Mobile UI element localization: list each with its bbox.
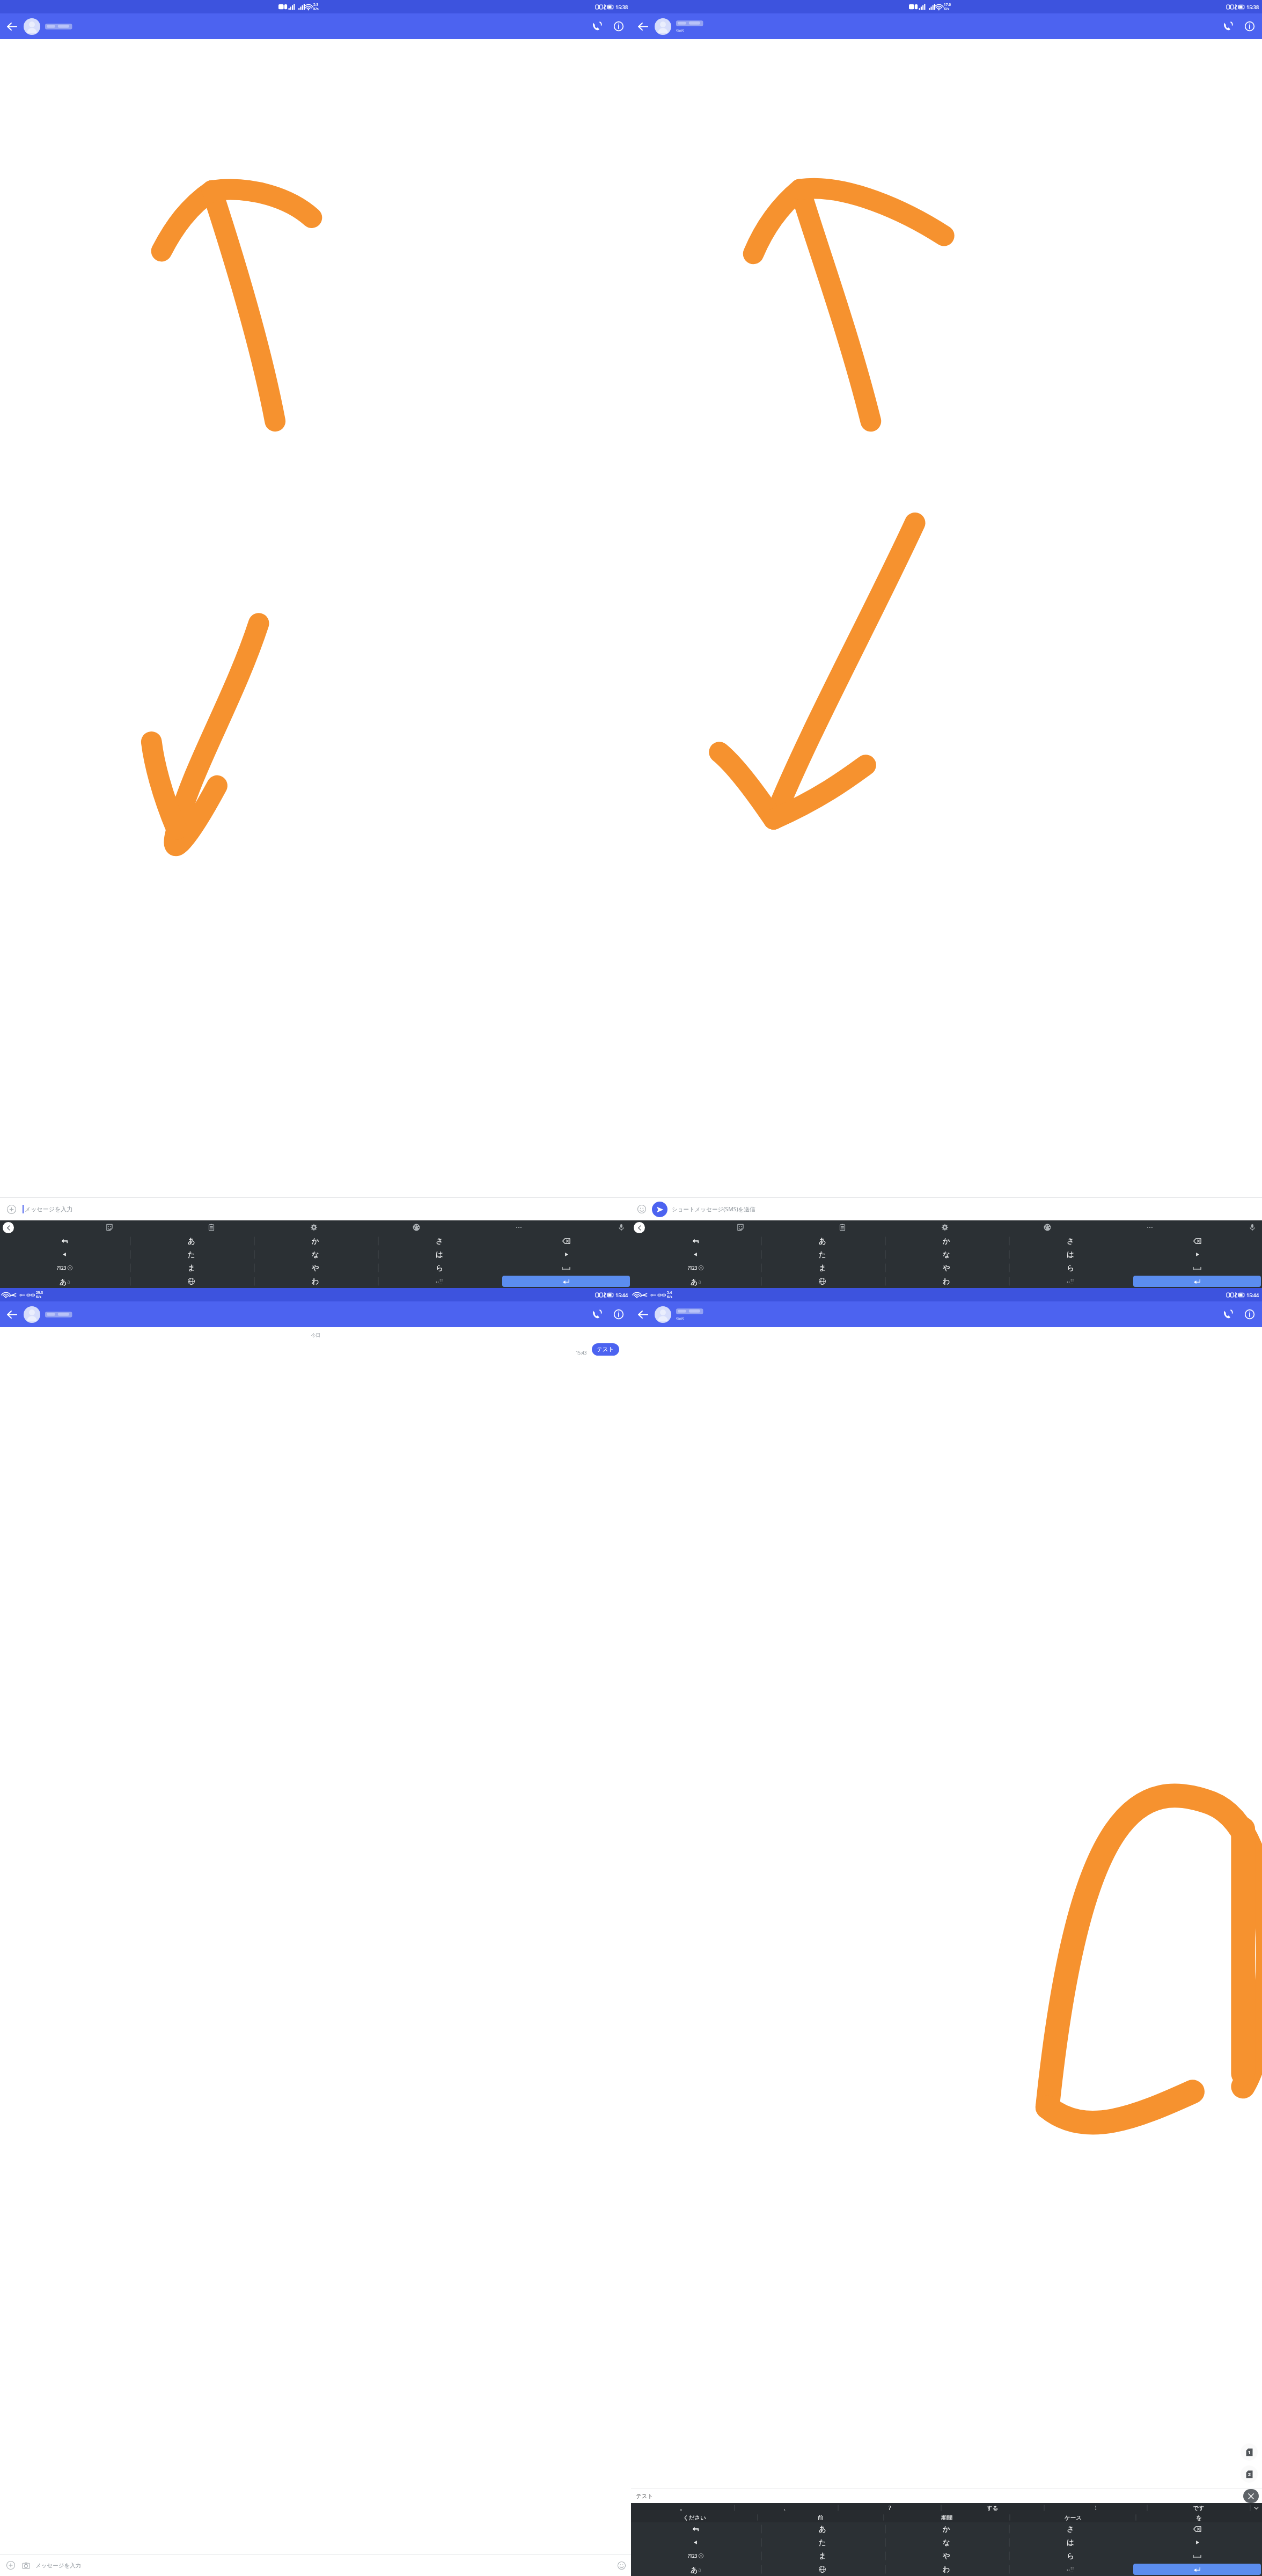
button[interactable]: を xyxy=(1136,2513,1262,2522)
button[interactable]: Settings xyxy=(307,1221,320,1234)
button[interactable]: Send with SIM 2 xyxy=(1241,2465,1258,2483)
button[interactable]: わ xyxy=(885,1276,1007,1287)
button[interactable]: な xyxy=(885,1249,1007,1260)
button[interactable]: 🌐 xyxy=(130,1276,252,1287)
button[interactable]: です xyxy=(1147,2503,1250,2513)
button[interactable]: な xyxy=(254,1249,376,1260)
button[interactable]: は xyxy=(378,1249,500,1260)
button[interactable]: ▶ xyxy=(502,1249,630,1260)
button[interactable]: あa xyxy=(632,2564,759,2575)
button[interactable]: 期間 xyxy=(884,2513,1010,2522)
button[interactable]: さ xyxy=(1009,1235,1131,1247)
button[interactable]: Clipboard xyxy=(205,1221,218,1234)
button[interactable]: Details xyxy=(607,15,630,38)
button[interactable]: ▶ xyxy=(1133,2537,1261,2548)
button[interactable]: ! xyxy=(1044,2503,1147,2513)
button[interactable]: あ xyxy=(761,1235,883,1247)
button[interactable]: Emoji xyxy=(614,2558,629,2573)
button[interactable]: な xyxy=(885,2537,1007,2548)
button[interactable]: 。 xyxy=(631,2503,735,2513)
button[interactable]: Voice input xyxy=(615,1221,628,1234)
button[interactable]: ,.?! xyxy=(1009,1276,1131,1287)
button[interactable]: Details xyxy=(607,1303,630,1326)
button[interactable]: か xyxy=(254,1235,376,1247)
button[interactable]: た xyxy=(130,1249,252,1260)
button[interactable]: テスト xyxy=(592,1343,619,1356)
button[interactable]: Details xyxy=(1238,1303,1261,1326)
button[interactable]: ま xyxy=(761,1262,883,1274)
button[interactable]: ← xyxy=(632,2523,759,2535)
button[interactable]: あ xyxy=(761,2523,883,2535)
button[interactable]: Call xyxy=(585,1303,607,1326)
button[interactable]: Back xyxy=(0,1302,24,1326)
button[interactable]: Send xyxy=(652,1202,667,1217)
button[interactable]: Settings xyxy=(938,1221,951,1234)
button[interactable]: Themes xyxy=(1041,1221,1054,1234)
button[interactable]: Emoji xyxy=(635,1202,649,1216)
button[interactable]: さ xyxy=(1009,2523,1131,2535)
button[interactable]: ケース xyxy=(1010,2513,1136,2522)
button[interactable]: ,.?! xyxy=(378,1276,500,1287)
button[interactable]: 前 xyxy=(758,2513,884,2522)
button[interactable]: や xyxy=(254,1262,376,1274)
button[interactable]: ← xyxy=(1,1235,128,1247)
button[interactable]: か xyxy=(885,1235,1007,1247)
button[interactable]: Add attachment xyxy=(3,1201,19,1217)
button[interactable]: さ xyxy=(378,1235,500,1247)
button[interactable]: は xyxy=(1009,2537,1131,2548)
button[interactable]: Back xyxy=(0,14,24,38)
button[interactable]: Camera xyxy=(18,2558,33,2573)
button[interactable]: Call xyxy=(1216,15,1238,38)
button[interactable]: する xyxy=(941,2503,1044,2513)
button[interactable]: わ xyxy=(254,1276,376,1287)
button[interactable]: わ xyxy=(885,2564,1007,2575)
button[interactable]: 🌐 xyxy=(761,1276,883,1287)
button[interactable]: あa xyxy=(1,1276,128,1287)
button[interactable]: More suggestions xyxy=(1250,2503,1262,2513)
button[interactable]: 、 xyxy=(735,2503,838,2513)
button[interactable]: Close xyxy=(1243,2489,1259,2503)
button[interactable]: ◀ xyxy=(1,1249,128,1260)
button[interactable]: ␣ xyxy=(1133,1262,1261,1274)
button[interactable]: Stickers xyxy=(734,1221,747,1234)
button[interactable]: た xyxy=(761,2537,883,2548)
button[interactable]: や xyxy=(885,1262,1007,1274)
button[interactable]: Stickers xyxy=(103,1221,116,1234)
button[interactable]: ら xyxy=(1009,1262,1131,1274)
button[interactable]: ,.?! xyxy=(1009,2564,1131,2575)
button[interactable]: 🌐 xyxy=(761,2564,883,2575)
button[interactable]: Clipboard xyxy=(836,1221,849,1234)
button[interactable]: Details xyxy=(1238,15,1261,38)
button[interactable]: ら xyxy=(1009,2550,1131,2562)
button[interactable]: ⌫ xyxy=(1133,2523,1261,2535)
button[interactable]: Close toolbar xyxy=(634,1222,645,1233)
button[interactable]: ? xyxy=(838,2503,941,2513)
button[interactable]: か xyxy=(885,2523,1007,2535)
button[interactable]: ␣ xyxy=(1133,2550,1261,2562)
button[interactable]: Call xyxy=(1216,1303,1238,1326)
button[interactable]: ↵ xyxy=(502,1276,630,1287)
button[interactable]: あ xyxy=(130,1235,252,1247)
button[interactable]: More xyxy=(1143,1221,1156,1234)
button[interactable]: Voice input xyxy=(1246,1221,1259,1234)
button[interactable]: Close toolbar xyxy=(3,1222,14,1233)
button[interactable]: は xyxy=(1009,1249,1131,1260)
button[interactable]: ⌫ xyxy=(1133,1235,1261,1247)
button[interactable]: Call xyxy=(585,15,607,38)
button[interactable]: ↵ xyxy=(1133,2564,1261,2575)
button[interactable]: Send with SIM 1 xyxy=(1241,2443,1258,2461)
button[interactable]: ◀ xyxy=(632,2537,759,2548)
button[interactable]: ⌫ xyxy=(502,1235,630,1247)
button[interactable]: ?123 xyxy=(1,1262,128,1274)
button[interactable]: Back xyxy=(631,14,655,38)
button[interactable]: Back xyxy=(631,1302,655,1326)
button[interactable]: ?123 xyxy=(632,1262,759,1274)
button[interactable]: Themes xyxy=(410,1221,423,1234)
button[interactable]: や xyxy=(885,2550,1007,2562)
button[interactable]: ま xyxy=(130,1262,252,1274)
button[interactable]: ␣ xyxy=(502,1262,630,1274)
button[interactable]: ▶ xyxy=(1133,1249,1261,1260)
button[interactable]: More xyxy=(512,1221,525,1234)
button[interactable]: ← xyxy=(632,1235,759,1247)
button[interactable]: ?123 xyxy=(632,2550,759,2562)
